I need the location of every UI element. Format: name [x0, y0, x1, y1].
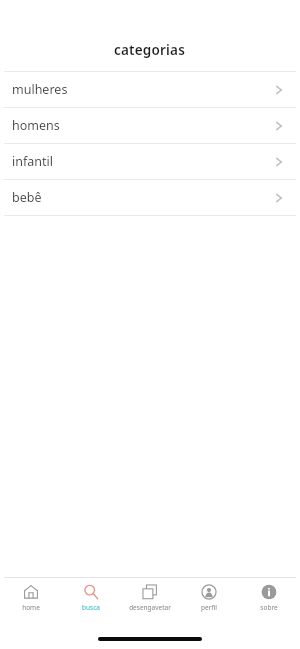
button[interactable]: busca: [63, 578, 119, 612]
button[interactable]: home: [3, 578, 59, 612]
button[interactable]: desengavetar: [122, 578, 178, 612]
staticText: categorias: [114, 41, 186, 59]
staticText: home: [3, 603, 59, 612]
button[interactable]: sobre: [241, 578, 297, 612]
staticText: homens: [12, 117, 272, 134]
button[interactable]: bebê: [0, 180, 300, 215]
button[interactable]: infantil: [0, 144, 300, 179]
button[interactable]: mulheres: [0, 72, 300, 107]
staticText: sobre: [241, 603, 297, 612]
button[interactable]: homens: [0, 108, 300, 143]
staticText: infantil: [12, 153, 272, 170]
staticText: mulheres: [12, 81, 272, 98]
staticText: desengavetar: [122, 603, 178, 612]
staticText: busca: [63, 603, 119, 612]
staticText: bebê: [12, 189, 272, 206]
button[interactable]: perfil: [181, 578, 237, 612]
staticText: perfil: [181, 603, 237, 612]
